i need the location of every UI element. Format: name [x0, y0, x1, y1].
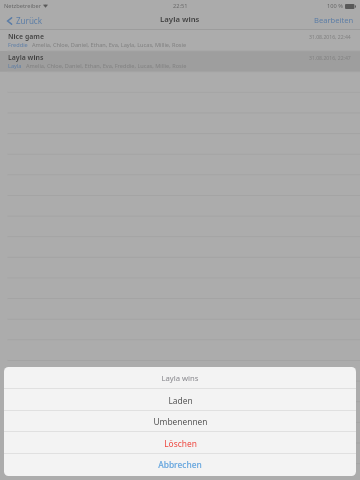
staticText: Nice game [8, 32, 44, 41]
staticText: Freddie [8, 41, 28, 49]
button[interactable]: Abbrechen [4, 454, 356, 476]
staticText: 22:51 [173, 2, 188, 10]
button[interactable]: Zurück [0, 12, 47, 29]
button[interactable]: Layla wins [4, 367, 356, 389]
staticText: Amelia, Chloe, Daniel, Ethan, Eva, Layla… [32, 41, 187, 49]
staticText: Löschen [164, 438, 197, 449]
staticText: Netzbetreiber [4, 2, 41, 10]
staticText: 31.08.2016, 22:47 [309, 55, 351, 62]
button[interactable]: Umbenennen [4, 411, 356, 433]
button[interactable]: Layla wins [0, 51, 360, 72]
staticText: Layla wins [8, 53, 44, 62]
staticText: Layla wins [160, 14, 200, 24]
button[interactable]: Nice game [0, 30, 360, 51]
staticText: Laden [168, 395, 193, 406]
button[interactable]: Laden [4, 389, 356, 411]
staticText: Umbenennen [153, 416, 208, 427]
staticText: 31.08.2016, 22:44 [309, 34, 351, 41]
button[interactable]: Bearbeiten [310, 12, 360, 28]
staticText: Abbrechen [158, 459, 202, 470]
staticText: 100 % [327, 2, 343, 10]
staticText: Amelia, Chloe, Daniel, Ethan, Eva, Fredd… [26, 62, 187, 70]
staticText: Layla wins [161, 373, 199, 383]
staticText: Layla [8, 62, 22, 70]
button[interactable]: Löschen [4, 432, 356, 454]
staticText: Zurück [16, 15, 43, 26]
